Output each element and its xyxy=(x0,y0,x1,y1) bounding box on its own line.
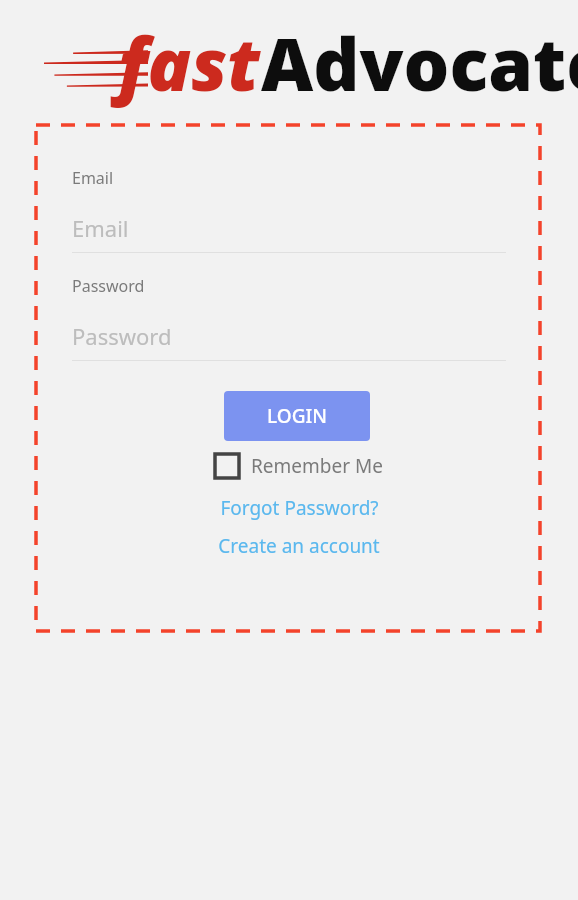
staticText: Password xyxy=(72,321,172,351)
staticText: LOGIN xyxy=(267,403,327,429)
staticText: Email xyxy=(72,213,129,243)
staticText: Advocate xyxy=(261,14,578,112)
staticText: Create an account xyxy=(218,533,380,559)
other: Remember Me checkbox xyxy=(215,454,239,478)
button[interactable]: Remember Me checkbox xyxy=(215,453,383,479)
staticText: Forgot Password? xyxy=(220,495,379,521)
staticText: fast xyxy=(118,14,261,112)
staticText: Email xyxy=(72,167,114,189)
button[interactable]: Password xyxy=(72,321,506,351)
button[interactable]: Create an account xyxy=(214,531,384,561)
button[interactable]: Forgot Password? xyxy=(216,493,383,523)
button[interactable]: Email xyxy=(72,213,506,243)
staticText: Remember Me xyxy=(251,453,383,479)
staticText: Password xyxy=(72,275,145,297)
button[interactable]: LOGIN xyxy=(224,391,370,441)
